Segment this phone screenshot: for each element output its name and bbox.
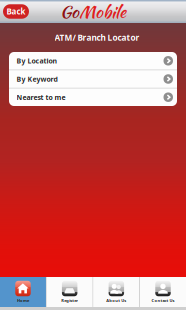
staticText: Register bbox=[61, 298, 78, 303]
button[interactable]: Register bbox=[47, 277, 93, 307]
staticText: Back bbox=[6, 6, 25, 17]
button[interactable]: Home bbox=[0, 277, 46, 307]
staticText: Nearest to me bbox=[16, 92, 65, 102]
button[interactable]: Nearest to me bbox=[9, 88, 177, 106]
button[interactable]: Contact Us bbox=[140, 277, 186, 307]
button[interactable]: By Location bbox=[9, 52, 177, 70]
staticText: Contact Us bbox=[151, 298, 174, 303]
staticText: About Us bbox=[106, 298, 126, 303]
button[interactable]: Back bbox=[3, 4, 29, 19]
staticText: By Keyword bbox=[16, 74, 57, 84]
button[interactable]: About Us bbox=[93, 277, 139, 307]
staticText: Go bbox=[60, 0, 79, 24]
staticText: ATM/ Branch Locator bbox=[54, 32, 139, 43]
staticText: Mobile bbox=[79, 0, 126, 24]
button[interactable]: By Keyword bbox=[9, 70, 177, 88]
staticText: Home bbox=[17, 298, 29, 303]
staticText: By Location bbox=[16, 56, 57, 65]
